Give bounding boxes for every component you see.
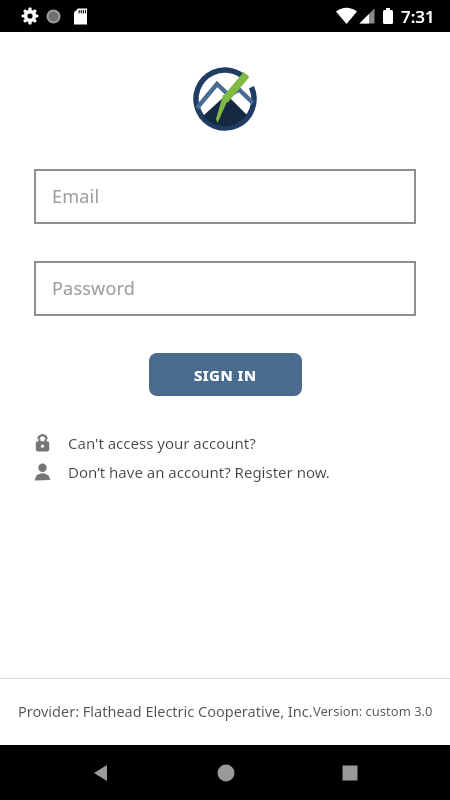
button[interactable] <box>337 760 363 786</box>
staticText: Can't access your account? <box>68 433 256 453</box>
staticText: Don’t have an account? Register now. <box>68 462 330 482</box>
staticText: Email <box>52 184 100 209</box>
staticText: Version: custom 3.0 <box>313 702 433 720</box>
staticText: Provider: Flathead Electric Cooperative,… <box>18 701 313 721</box>
button[interactable]: Can't access your account? <box>34 433 450 453</box>
button[interactable] <box>88 760 114 786</box>
button[interactable]: Email <box>34 169 416 224</box>
staticText: SIGN IN <box>194 365 257 385</box>
button[interactable] <box>213 760 239 786</box>
staticText: 7:31 <box>401 5 435 28</box>
button[interactable]: Password <box>34 261 416 316</box>
staticText: Password <box>52 276 136 301</box>
button[interactable]: Don’t have an account? Register now. <box>34 462 450 482</box>
button[interactable]: SIGN IN <box>149 353 302 396</box>
